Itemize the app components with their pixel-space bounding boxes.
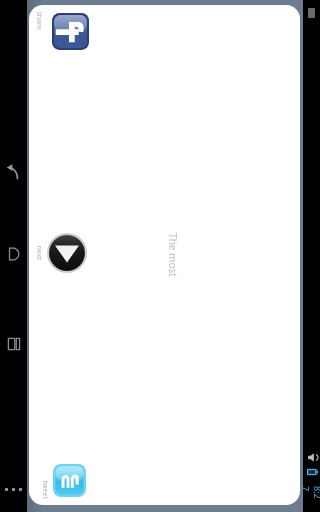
button[interactable]: Next quote (29, 231, 89, 275)
staticText: tweet (39, 480, 49, 499)
button[interactable]: More options (0, 478, 27, 500)
button[interactable]: Home (0, 232, 27, 276)
staticText: share (33, 11, 43, 30)
button[interactable]: Share on Twitter (31, 462, 88, 499)
button[interactable]: Recent apps (0, 322, 27, 366)
staticText: The most important thing is the thing mo… (166, 229, 180, 281)
button[interactable]: Back (0, 150, 27, 194)
button[interactable]: Share on Facebook (30, 11, 91, 52)
staticText: 8:27 (300, 486, 320, 500)
staticText: next (33, 245, 43, 260)
